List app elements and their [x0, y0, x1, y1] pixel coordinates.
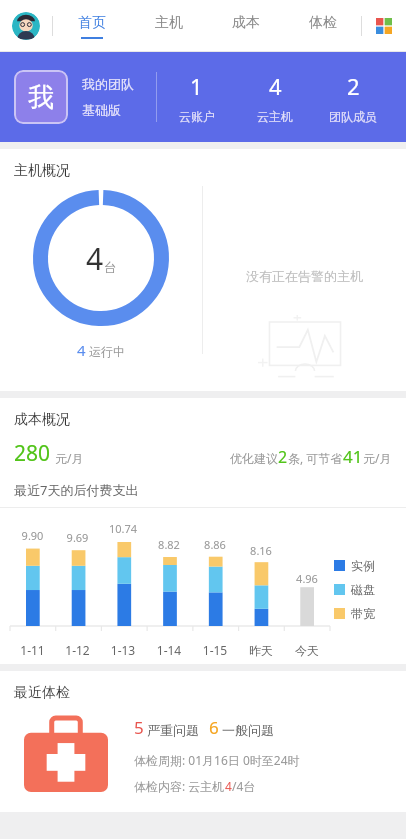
staticText: 8.16 [238, 543, 284, 558]
button[interactable]: 4 [236, 71, 314, 124]
staticText: 6 [209, 716, 219, 739]
staticText: 8.82 [146, 537, 192, 552]
staticText: 1 [190, 71, 203, 101]
staticText: 台 [104, 259, 117, 275]
staticText: 我的团队 [82, 76, 134, 92]
staticText: 磁盘 [351, 582, 375, 597]
staticText: 运行中 [89, 344, 125, 359]
staticText: 带宽 [351, 606, 375, 621]
button[interactable]: 体检 [284, 0, 361, 52]
staticText: 1-13 [100, 642, 146, 658]
staticText: 基础版 [82, 102, 121, 118]
staticText: 昨天 [238, 643, 284, 658]
staticText: 4 [269, 71, 282, 101]
button[interactable]: 2 [314, 71, 392, 124]
staticText: 1-15 [192, 642, 238, 658]
staticText: 实例 [351, 558, 375, 573]
staticText: 今天 [284, 643, 330, 658]
staticText: 1-14 [146, 642, 192, 658]
staticText: 成本概况 [14, 411, 70, 429]
staticText: 元/月 [363, 450, 392, 466]
staticText: 9.69 [55, 530, 100, 545]
staticText: /4台 [232, 778, 256, 794]
staticText: 4 [77, 340, 86, 360]
staticText: 最近7天的后付费支出 [14, 481, 139, 499]
staticText: 2 [347, 71, 360, 101]
staticText: 9.90 [10, 528, 55, 543]
staticText: 最近体检 [14, 684, 70, 702]
staticText: 8.86 [192, 537, 238, 552]
staticText: 5 [134, 716, 144, 739]
staticText: 一般问题 [222, 722, 274, 738]
staticText: 主机 [155, 14, 183, 32]
staticText: 成本 [232, 14, 260, 32]
staticText: 云账户 [179, 109, 215, 124]
button[interactable]: 成本 [207, 0, 284, 52]
staticText: 首页 [78, 14, 106, 32]
button[interactable]: 我 [0, 52, 406, 142]
staticText: 280 [14, 439, 51, 468]
button[interactable]: 5 [0, 716, 406, 794]
button[interactable]: 首页 [53, 0, 130, 52]
staticText: 1-11 [10, 642, 55, 658]
button[interactable]: 主机 [130, 0, 207, 52]
staticText: 云主机 [257, 109, 293, 124]
staticText: 主机概况 [14, 162, 70, 180]
staticText: 2 [278, 446, 288, 468]
staticText: 4 [86, 238, 104, 279]
staticText: 10.74 [100, 521, 146, 536]
staticText: 我 [28, 81, 54, 114]
staticText: 优化建议 [230, 451, 278, 466]
staticText: 元/月 [55, 450, 84, 466]
button[interactable]: 1 [157, 71, 236, 124]
staticText: 没有正在告警的主机 [246, 268, 363, 284]
staticText: 严重问题 [147, 722, 199, 738]
staticText: 体检内容: 云主机 [134, 778, 225, 794]
staticText: 体检周期: 01月16日 0时至24时 [134, 752, 300, 768]
staticText: 1-12 [55, 642, 100, 658]
staticText: 条, 可节省 [288, 450, 343, 466]
staticText: 41 [343, 445, 363, 468]
staticText: 体检 [309, 14, 337, 32]
button[interactable]: Apps [372, 14, 396, 38]
staticText: 4 [225, 778, 232, 794]
staticText: 4.96 [284, 571, 330, 586]
staticText: 团队成员 [329, 109, 377, 124]
button[interactable]: Profile [12, 12, 40, 40]
